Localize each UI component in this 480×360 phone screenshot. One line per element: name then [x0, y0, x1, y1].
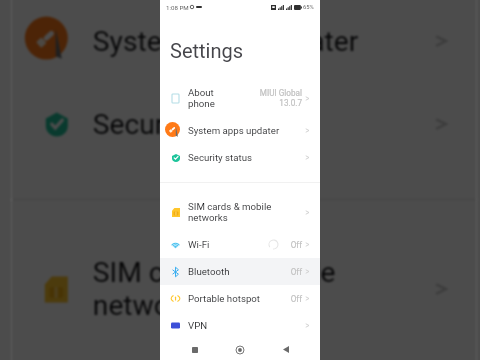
staticText: SIM cards & mobile networks	[93, 256, 434, 322]
button[interactable]: SIM cards & mobile networks	[12, 231, 477, 347]
button[interactable]: Recent apps	[184, 339, 206, 360]
button[interactable]: Wi-Fi	[160, 231, 320, 258]
staticText: VPN	[188, 320, 305, 331]
button[interactable]: Security status	[160, 144, 320, 171]
staticText: Off	[290, 267, 302, 277]
button[interactable]: Back	[275, 339, 297, 360]
staticText: Portable hotspot	[188, 293, 290, 304]
staticText: Wi-Fi	[188, 239, 269, 250]
button[interactable]: Portable hotspot	[160, 285, 320, 312]
button[interactable]: Home	[229, 339, 251, 360]
button[interactable]: Wi-Fi	[12, 347, 477, 360]
button[interactable]: System apps updater	[160, 117, 320, 144]
button[interactable]: System apps updater	[12, 0, 477, 83]
staticText: SIM cards & mobile networks	[188, 201, 305, 223]
button[interactable]: VPN	[160, 312, 320, 339]
staticText: Off	[290, 294, 302, 304]
button[interactable]: SIM cards & mobile networks	[160, 193, 320, 231]
staticText: 1:08 PM	[166, 4, 189, 11]
staticText: Bluetooth	[188, 266, 290, 277]
staticText: Settings	[170, 39, 244, 62]
button[interactable]: About phone	[160, 79, 320, 117]
staticText: About phone	[188, 87, 259, 109]
staticText: System apps updater	[93, 25, 434, 58]
staticText: 65%	[303, 4, 314, 11]
staticText: Security status	[188, 152, 305, 163]
button[interactable]: Security status	[12, 83, 477, 166]
staticText: MIUI Global 13.0.7	[259, 88, 302, 108]
staticText: Off	[290, 240, 302, 250]
staticText: Security status	[93, 108, 434, 141]
staticText: System apps updater	[188, 125, 305, 136]
button[interactable]: Bluetooth	[160, 258, 320, 285]
